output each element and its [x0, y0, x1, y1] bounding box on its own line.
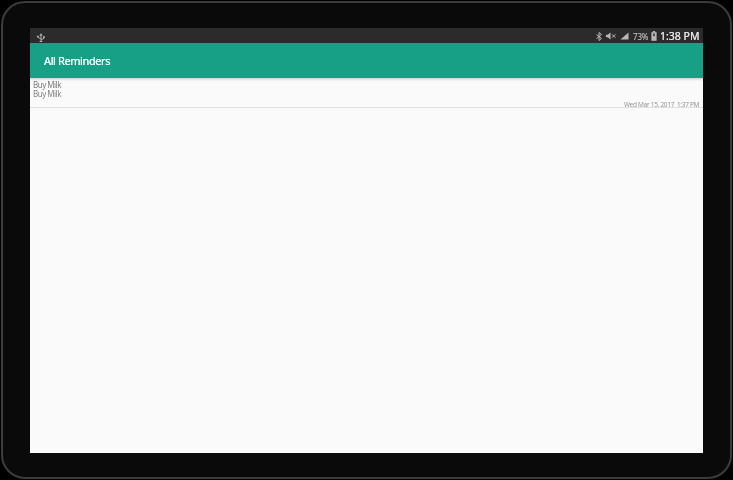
button[interactable]: Buy Milk	[30, 78, 703, 108]
staticText: 73%	[633, 31, 649, 42]
staticText: Wed Mar 15, 2017 1:37 PM	[624, 100, 700, 109]
staticText: Buy Milk	[33, 79, 61, 90]
staticText: Buy Milk	[33, 88, 61, 99]
staticText: 1:38 PM	[660, 29, 700, 43]
staticText: All Reminders	[44, 53, 111, 68]
